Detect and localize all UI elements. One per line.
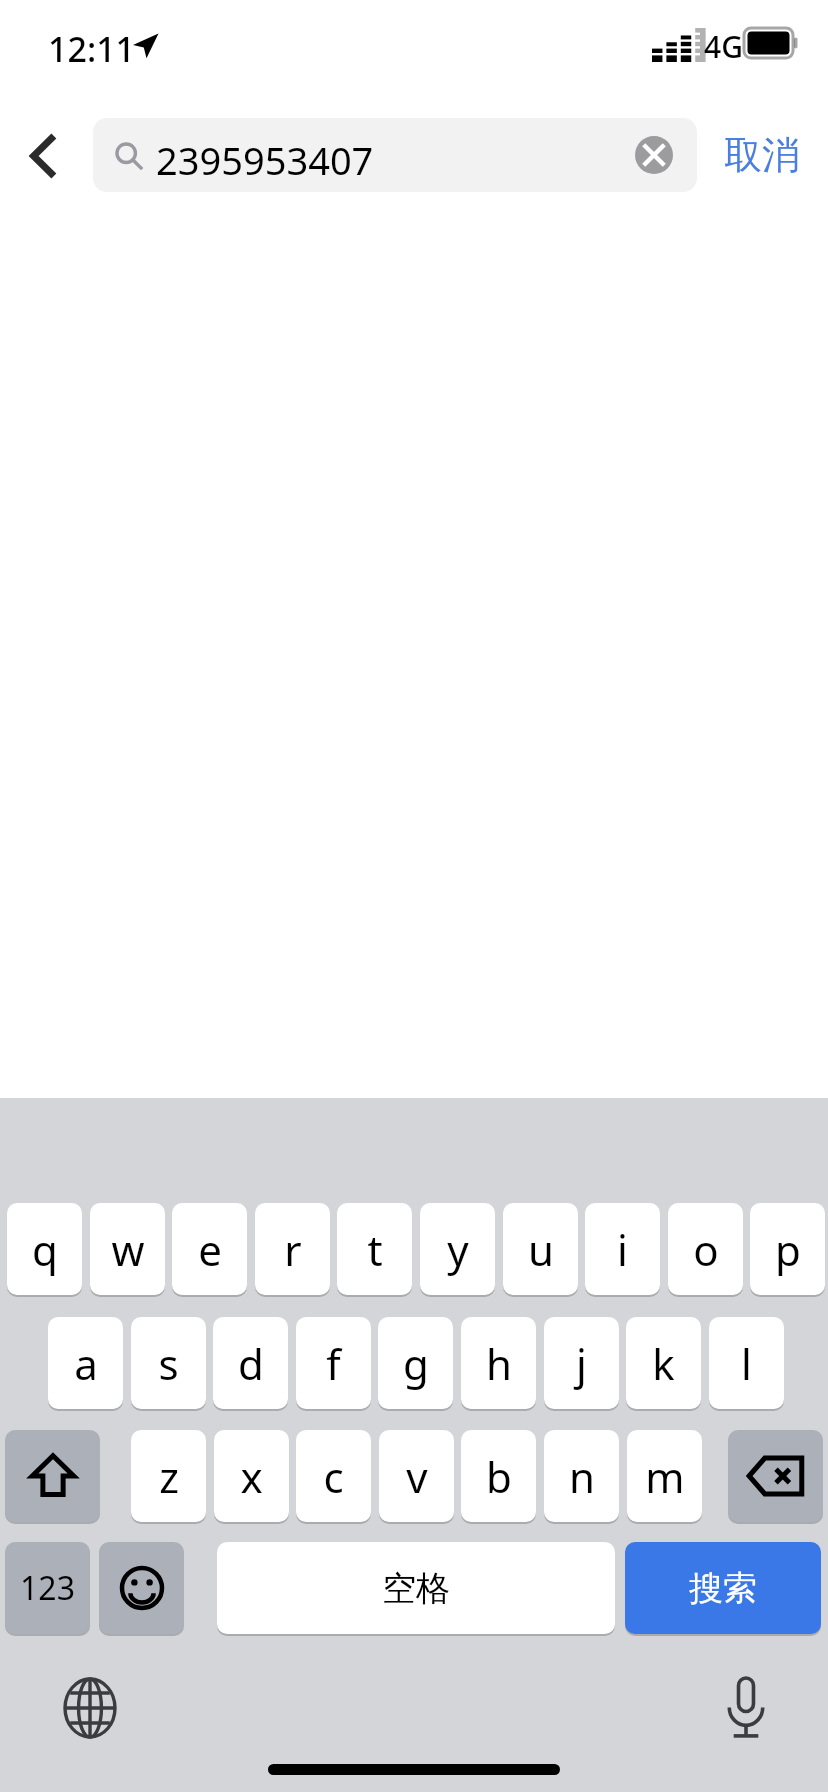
staticText: u	[528, 1221, 554, 1278]
button[interactable]: r	[255, 1203, 330, 1295]
button[interactable]: Back	[12, 112, 76, 200]
button[interactable]: c	[296, 1430, 371, 1522]
button[interactable]: h	[461, 1317, 536, 1409]
staticText: 取消	[724, 131, 800, 179]
button[interactable]: x	[214, 1430, 289, 1522]
button[interactable]: Clear text	[635, 136, 673, 174]
button[interactable]: 取消	[712, 118, 812, 192]
staticText: v	[406, 1448, 428, 1505]
staticText: n	[569, 1448, 595, 1505]
button[interactable]: g	[378, 1317, 453, 1409]
staticText: a	[74, 1335, 98, 1392]
button[interactable]: d	[213, 1317, 288, 1409]
staticText: m	[645, 1448, 685, 1505]
staticText: z	[159, 1448, 179, 1505]
staticText: 4G	[704, 26, 743, 67]
staticText: o	[693, 1221, 719, 1278]
staticText: 123	[20, 1566, 75, 1610]
button[interactable]: s	[131, 1317, 206, 1409]
staticText: e	[198, 1221, 222, 1278]
staticText: s	[158, 1335, 179, 1392]
button[interactable]: j	[544, 1317, 619, 1409]
staticText: y	[447, 1221, 469, 1278]
button[interactable]: q	[7, 1203, 82, 1295]
button[interactable]: Voice input	[706, 1668, 786, 1748]
button[interactable]: Backspace	[728, 1430, 823, 1522]
button[interactable]: n	[544, 1430, 619, 1522]
staticText: 搜索	[689, 1567, 757, 1610]
staticText: 2395953407	[156, 134, 374, 186]
staticText: q	[32, 1221, 58, 1278]
staticText: t	[367, 1221, 383, 1278]
button[interactable]: b	[461, 1430, 536, 1522]
staticText: r	[284, 1221, 302, 1278]
button[interactable]: o	[668, 1203, 743, 1295]
staticText: g	[403, 1335, 429, 1392]
button[interactable]: e	[172, 1203, 247, 1295]
button[interactable]: m	[627, 1430, 702, 1522]
button[interactable]: Shift	[5, 1430, 100, 1522]
button[interactable]: y	[420, 1203, 495, 1295]
staticText: b	[486, 1448, 512, 1505]
staticText: j	[576, 1335, 587, 1392]
button[interactable]: 空格	[217, 1542, 615, 1634]
staticText: p	[775, 1221, 801, 1278]
button[interactable]: i	[585, 1203, 660, 1295]
button[interactable]: u	[503, 1203, 578, 1295]
staticText: h	[486, 1335, 512, 1392]
button[interactable]: f	[296, 1317, 371, 1409]
button[interactable]: p	[750, 1203, 825, 1295]
staticText: c	[323, 1448, 344, 1505]
staticText: f	[326, 1335, 341, 1392]
button[interactable]: Switch keyboard language	[50, 1668, 130, 1748]
button[interactable]: z	[131, 1430, 206, 1522]
button[interactable]: l	[709, 1317, 784, 1409]
button[interactable]: 123	[5, 1542, 90, 1634]
staticText: d	[238, 1335, 264, 1392]
button[interactable]: v	[379, 1430, 454, 1522]
button[interactable]: Emoji	[99, 1542, 184, 1634]
staticText: i	[617, 1221, 628, 1278]
staticText: l	[741, 1335, 752, 1392]
button[interactable]: 2395953407	[93, 118, 697, 192]
staticText: w	[111, 1221, 145, 1278]
button[interactable]: w	[90, 1203, 165, 1295]
button[interactable]: t	[337, 1203, 412, 1295]
button[interactable]: 搜索	[625, 1542, 821, 1634]
staticText: x	[240, 1448, 263, 1505]
staticText: k	[652, 1335, 675, 1392]
button[interactable]: a	[48, 1317, 123, 1409]
staticText: 空格	[382, 1567, 450, 1610]
button[interactable]: k	[626, 1317, 701, 1409]
staticText: 12:11	[48, 26, 136, 72]
